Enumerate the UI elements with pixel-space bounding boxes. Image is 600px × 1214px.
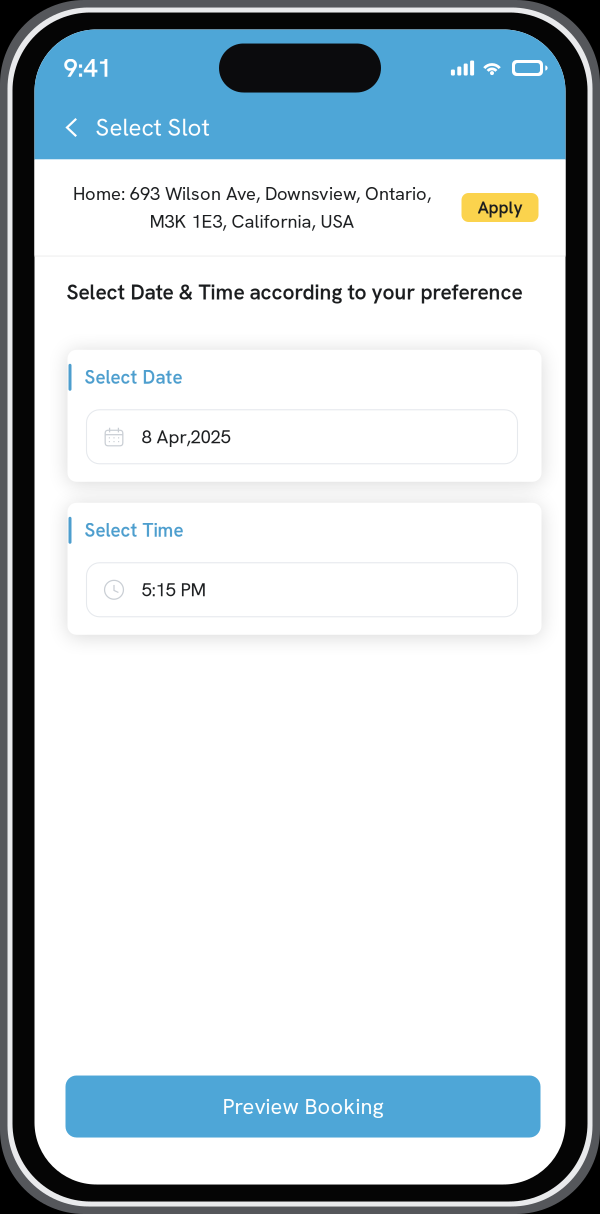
staticText: 9:41 [63,51,111,84]
button[interactable]: Back [57,105,85,149]
staticText: Select Date [84,365,182,389]
staticText: Select Date & Time according to your pre… [66,278,522,306]
staticText: M3K 1E3, California, USA [149,209,354,233]
button[interactable]: 5:15 PM [86,563,517,617]
button[interactable]: Preview Booking [65,1075,540,1137]
button[interactable]: 8 Apr,2025 [86,410,517,464]
staticText: 8 Apr,2025 [141,425,230,449]
staticText: Select Slot [95,112,209,143]
button[interactable]: Apply [461,193,538,222]
staticText: Apply [477,196,522,219]
staticText: Select Time [84,518,183,542]
staticText: Preview Booking [222,1092,383,1121]
staticText: 5:15 PM [141,578,206,602]
staticText: Home: 693 Wilson Ave, Downsview, Ontario… [73,182,431,205]
